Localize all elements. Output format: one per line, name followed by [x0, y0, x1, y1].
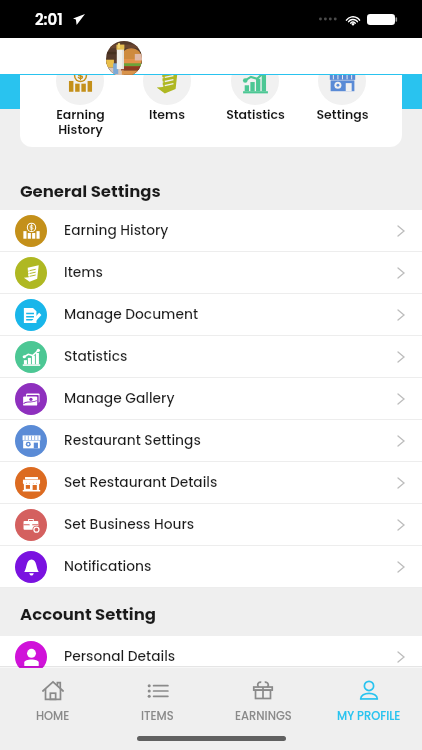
staticText: Personal Details: [64, 647, 176, 666]
button[interactable]: Items: [125, 75, 209, 123]
button[interactable]: Notifications: [0, 546, 422, 588]
button[interactable]: Restaurant Settings: [0, 420, 422, 462]
staticText: MY PROFILE: [337, 708, 401, 724]
button[interactable]: Earning History: [0, 210, 422, 252]
staticText: Account Setting: [20, 603, 156, 626]
staticText: Earning History: [64, 221, 169, 240]
button[interactable]: Personal Details: [0, 636, 422, 678]
button[interactable]: ITEMS: [105, 680, 210, 724]
button[interactable]: Set Business Hours: [0, 504, 422, 546]
button[interactable]: Manage Document: [0, 294, 422, 336]
button[interactable]: Items: [0, 252, 422, 294]
staticText: EARNINGS: [235, 708, 292, 724]
button[interactable]: Set Restaurant Details: [0, 462, 422, 504]
button[interactable]: EARNINGS: [210, 680, 316, 724]
staticText: HOME: [36, 708, 70, 724]
button[interactable]: Statistics: [213, 75, 297, 123]
button[interactable]: Settings: [300, 75, 384, 123]
staticText: 2:01: [35, 9, 63, 30]
staticText: Restaurant Settings: [64, 431, 201, 450]
staticText: Set Business Hours: [64, 515, 195, 534]
staticText: Manage Document: [64, 305, 199, 324]
button[interactable]: Manage Gallery: [0, 378, 422, 420]
staticText: Statistics: [64, 347, 128, 366]
button[interactable]: Statistics: [0, 336, 422, 378]
staticText: Earning History: [56, 106, 105, 138]
staticText: ITEMS: [141, 708, 174, 724]
button[interactable]: Earning History: [38, 75, 122, 138]
staticText: Statistics: [226, 106, 285, 123]
staticText: Set Restaurant Details: [64, 473, 218, 492]
staticText: Manage Gallery: [64, 389, 175, 408]
button[interactable]: HOME: [0, 680, 105, 724]
staticText: Items: [64, 263, 103, 282]
staticText: Items: [149, 106, 185, 123]
staticText: Settings: [316, 106, 369, 123]
staticText: General Settings: [20, 180, 161, 203]
button[interactable]: Profile photo: [106, 41, 142, 77]
button[interactable]: MY PROFILE: [316, 680, 422, 724]
staticText: Notifications: [64, 557, 152, 576]
